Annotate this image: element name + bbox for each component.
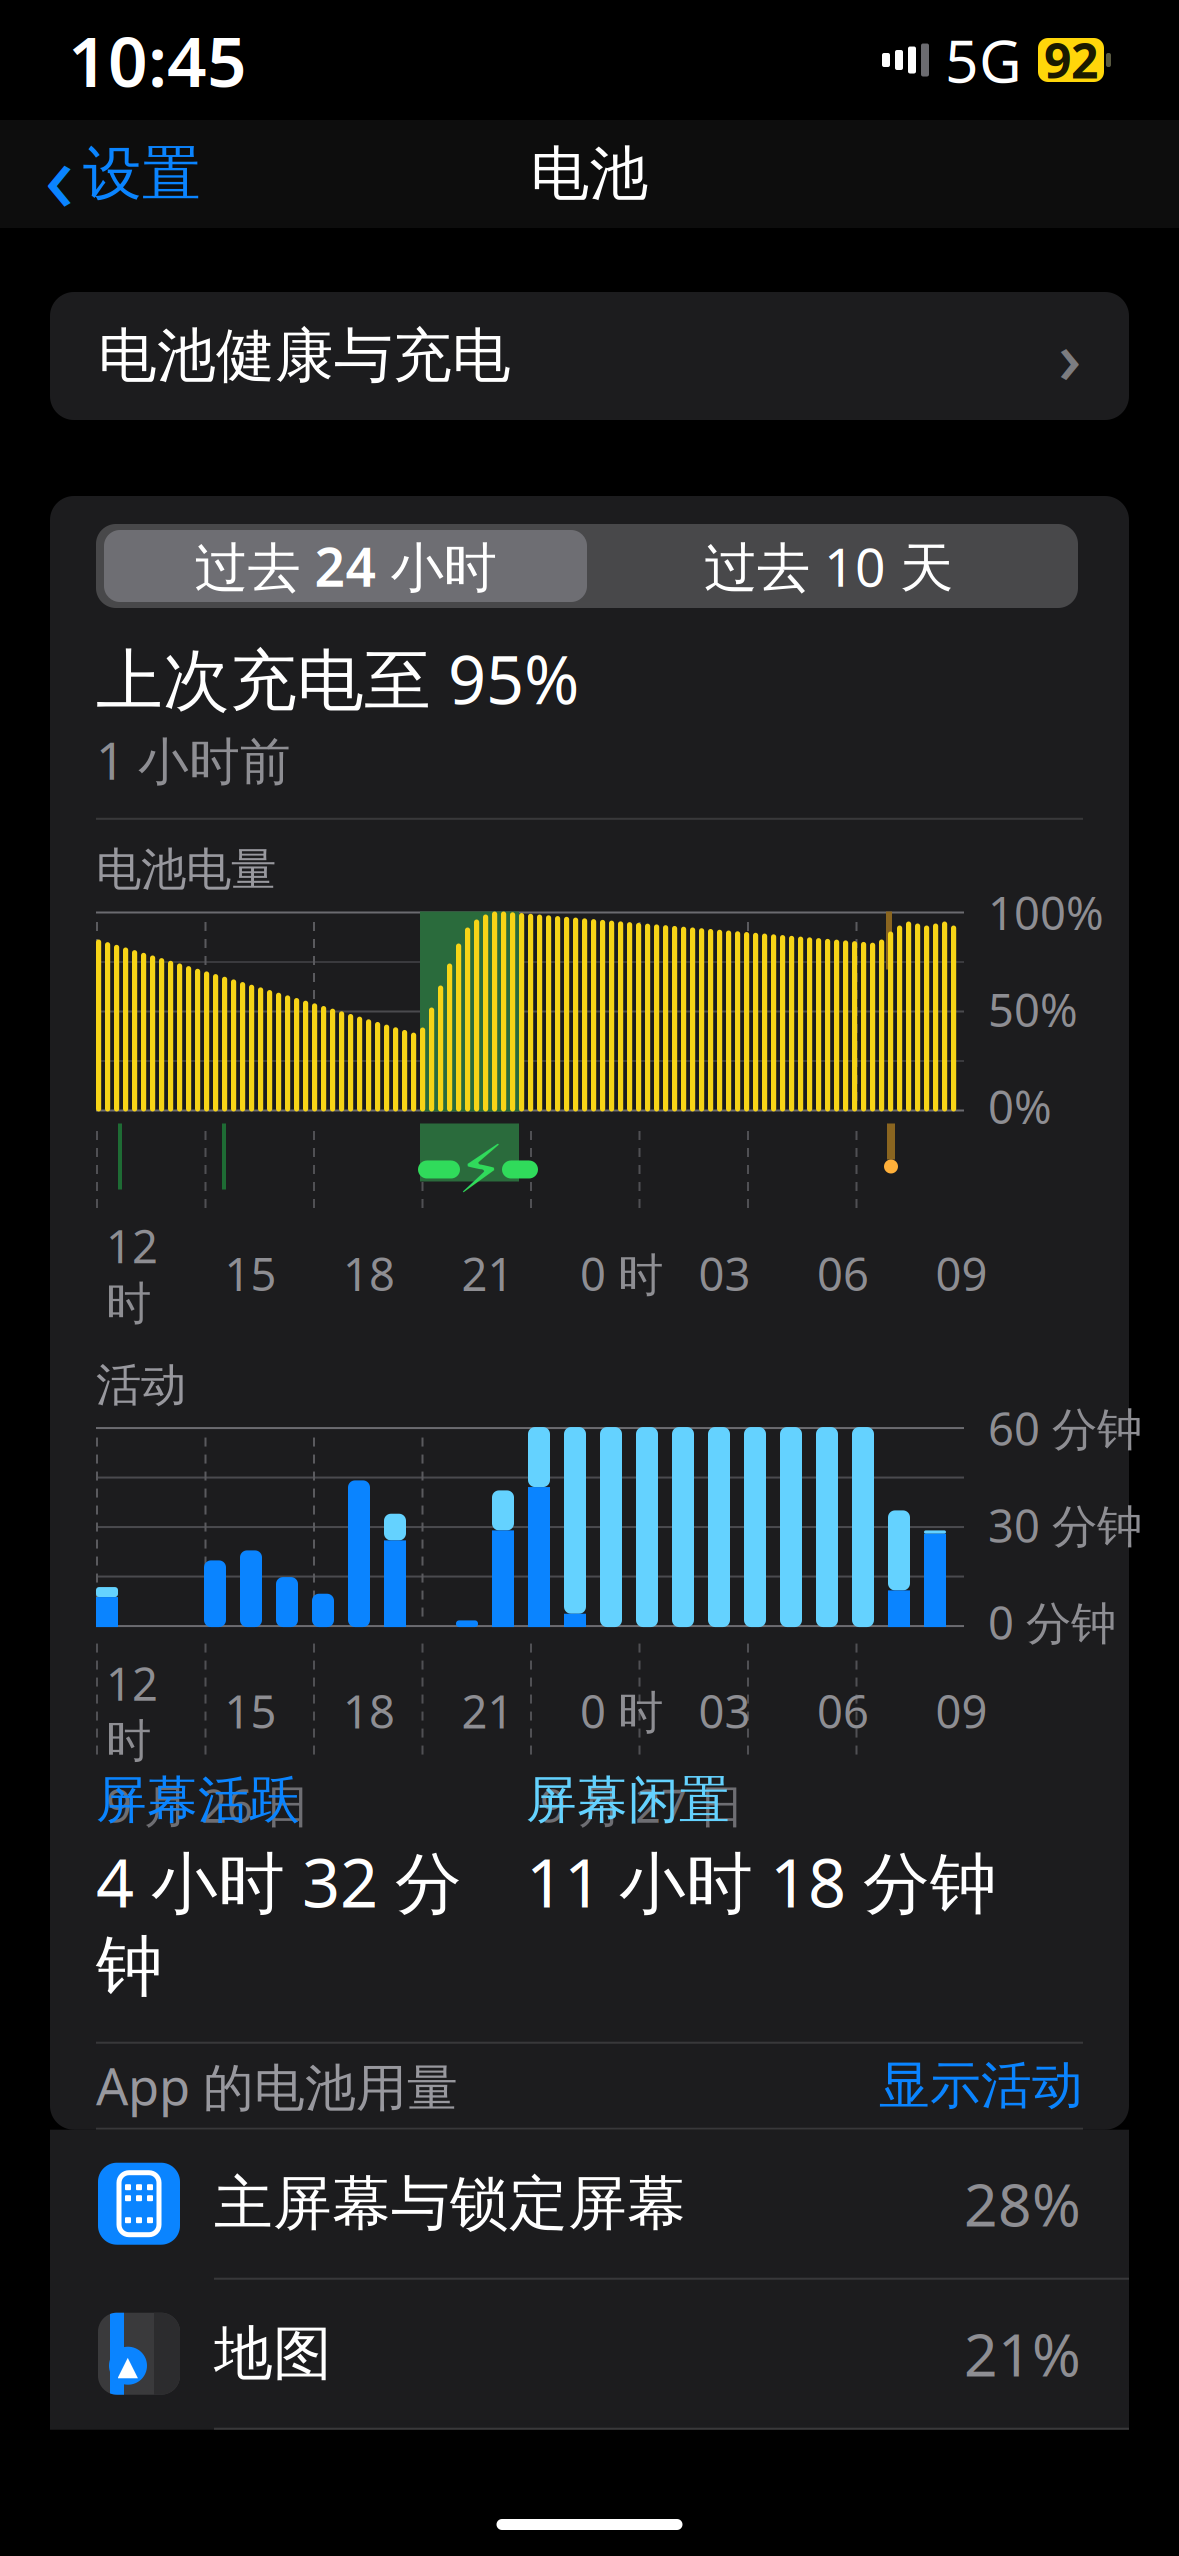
staticText: 03	[698, 1681, 750, 1741]
staticText: 21%	[964, 2315, 1081, 2393]
staticText: 0 时	[580, 1243, 663, 1303]
staticText: 9 月 27 日	[540, 1775, 744, 1835]
staticText: 显示活动	[879, 2055, 1083, 2117]
staticText: 15	[224, 1681, 276, 1741]
staticText: 5G	[945, 21, 1022, 99]
staticText: 06	[817, 1243, 869, 1303]
staticText: 06	[817, 1681, 869, 1741]
staticText: 12 时	[106, 1653, 158, 1769]
button[interactable]: 主屏幕与锁定屏幕	[50, 2130, 1129, 2280]
staticText: ›	[1058, 308, 1081, 404]
staticText: 09	[935, 1681, 987, 1741]
button[interactable]: 过去 10 天	[587, 530, 1070, 602]
staticText: 100%	[988, 882, 1104, 943]
staticText: ‹	[44, 108, 75, 239]
staticText: 地图	[214, 2318, 332, 2390]
staticText: 21	[461, 1681, 513, 1741]
staticText: 60 分钟	[988, 1398, 1142, 1458]
button[interactable]: 显示活动	[879, 2055, 1083, 2117]
staticText: 屏幕活跃	[96, 1769, 300, 1831]
staticText: 28%	[964, 2165, 1081, 2243]
staticText: 15	[224, 1243, 276, 1303]
staticText: 92	[1044, 28, 1098, 92]
staticText: 电池	[530, 138, 648, 210]
staticText: 11 小时 18 分钟	[526, 1837, 997, 1926]
staticText: 9 月 26 日	[106, 1775, 310, 1835]
staticText: 30 分钟	[988, 1495, 1142, 1555]
staticText: 上次充电至 95%	[96, 634, 579, 722]
staticText: 10:45	[68, 14, 247, 106]
staticText: ⚡︎	[457, 1132, 504, 1207]
staticText: 屏幕闲置	[526, 1769, 730, 1831]
staticText: 电池电量	[96, 842, 276, 897]
staticText: 电池健康与充电	[98, 320, 511, 392]
button[interactable]: ‹	[30, 126, 215, 222]
staticText: 活动	[96, 1357, 186, 1413]
staticText: 12 时	[106, 1215, 158, 1331]
staticText: 主屏幕与锁定屏幕	[214, 2168, 686, 2240]
staticText: 0%	[988, 1076, 1052, 1137]
button[interactable]: 过去 24 小时	[104, 530, 587, 602]
staticText: 设置	[83, 138, 201, 210]
staticText: 0 分钟	[988, 1592, 1116, 1652]
staticText: 过去 10 天	[704, 531, 953, 601]
staticText: 4 小时 32 分钟	[96, 1837, 462, 2008]
staticText: App 的电池用量	[96, 2052, 458, 2119]
staticText: 1 小时前	[96, 726, 291, 794]
staticText: 09	[935, 1243, 987, 1303]
staticText: 21	[461, 1243, 513, 1303]
staticText: 0 时	[580, 1681, 663, 1741]
staticText: 50%	[988, 979, 1078, 1040]
staticText: 03	[698, 1243, 750, 1303]
staticText: 过去 24 小时	[194, 531, 496, 601]
staticText: ▲	[117, 2351, 138, 2381]
staticText: 18	[343, 1681, 395, 1741]
staticText: 18	[343, 1243, 395, 1303]
button[interactable]: ▲	[50, 2280, 1129, 2430]
button[interactable]: 电池健康与充电	[50, 292, 1129, 420]
